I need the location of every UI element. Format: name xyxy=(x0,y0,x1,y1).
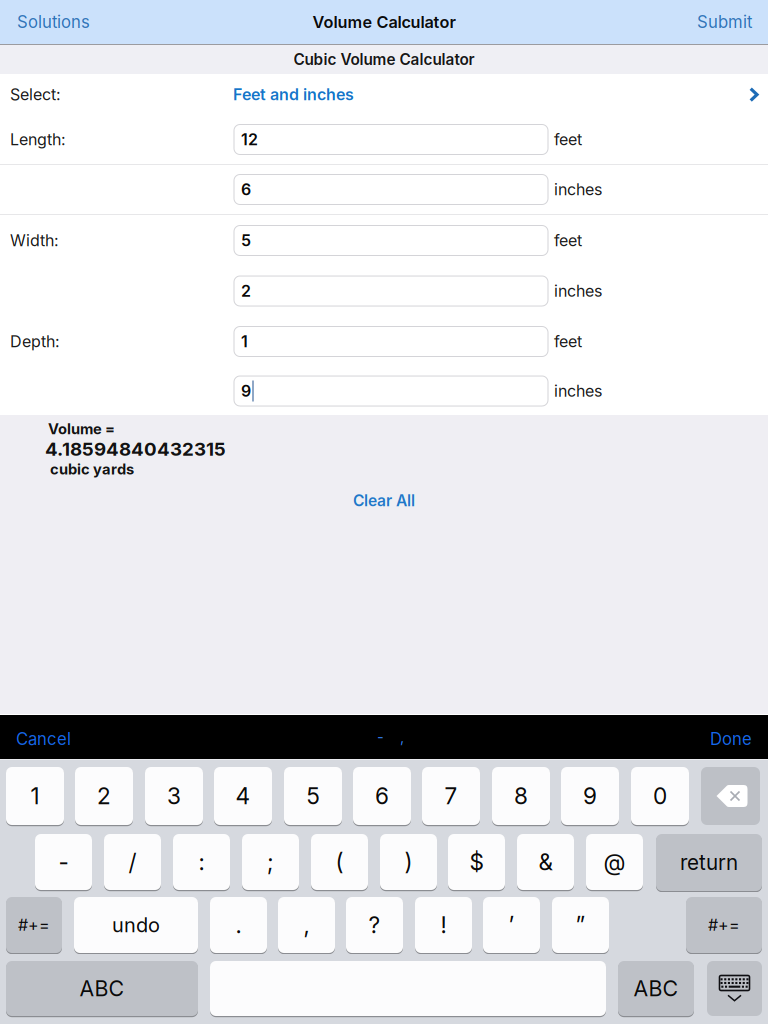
staticText: Length: xyxy=(10,130,66,149)
staticText: 2 xyxy=(97,782,111,810)
button[interactable]: $ xyxy=(448,834,505,891)
button[interactable]: Submit xyxy=(683,1,768,43)
button[interactable]: ( xyxy=(311,834,368,891)
staticText: 12 xyxy=(241,130,258,149)
button[interactable]: #+= xyxy=(686,897,762,954)
staticText: : xyxy=(198,848,204,876)
staticText: & xyxy=(538,848,552,876)
staticText: Depth: xyxy=(10,332,60,351)
staticText: , xyxy=(400,728,404,746)
staticText: Volume Calculator xyxy=(312,12,455,32)
button[interactable]: / xyxy=(104,834,161,891)
button[interactable]: 2 xyxy=(75,767,133,826)
button[interactable]: & xyxy=(517,834,574,891)
staticText: 1 xyxy=(241,332,248,351)
staticText: ( xyxy=(335,848,343,876)
button[interactable]: ; xyxy=(242,834,299,891)
button[interactable]: Clear All xyxy=(339,485,429,516)
button[interactable]: 6 xyxy=(353,767,411,826)
staticText: 4.18594840432315 xyxy=(45,438,226,460)
button[interactable]: 9 xyxy=(561,767,619,826)
button[interactable]: @ xyxy=(586,834,643,891)
staticText: inches xyxy=(554,381,602,401)
staticText: Submit xyxy=(697,12,752,32)
staticText: 8 xyxy=(514,782,528,810)
staticText: Feet and inches xyxy=(233,85,354,104)
staticText: 6 xyxy=(241,180,251,199)
button[interactable]: 5 xyxy=(284,767,342,826)
staticText: feet xyxy=(554,130,582,149)
staticText: . xyxy=(235,911,241,939)
staticText: feet xyxy=(554,231,582,250)
button[interactable]: 4 xyxy=(214,767,272,826)
staticText: Solutions xyxy=(17,12,90,32)
staticText: ABC xyxy=(79,976,124,1001)
staticText: 4 xyxy=(235,782,250,810)
staticText: #+= xyxy=(708,915,740,935)
button[interactable]: Cancel xyxy=(0,716,87,758)
button[interactable]: 0 xyxy=(631,767,689,826)
staticText: return xyxy=(680,850,738,875)
staticText: ! xyxy=(440,911,446,939)
staticText: ; xyxy=(267,848,274,876)
button[interactable]: ? xyxy=(346,897,403,954)
staticText: undo xyxy=(112,913,160,937)
button[interactable]: , xyxy=(278,897,335,954)
button[interactable]: 8 xyxy=(492,767,550,826)
staticText: 2 xyxy=(241,281,251,301)
button[interactable]: ABC xyxy=(6,961,198,1017)
staticText: feet xyxy=(554,332,582,351)
button[interactable]: - xyxy=(35,834,92,891)
staticText: inches xyxy=(554,281,602,301)
button[interactable]: 1 xyxy=(6,767,64,826)
staticText: / xyxy=(128,848,136,876)
staticText: Width: xyxy=(10,231,59,250)
button[interactable]: ABC xyxy=(618,961,694,1017)
staticText: 6 xyxy=(375,782,389,810)
staticText: ” xyxy=(575,911,585,939)
button[interactable]: Select: xyxy=(0,74,768,115)
staticText: ’ xyxy=(508,911,514,939)
staticText: cubic yards xyxy=(50,460,134,478)
staticText: Select: xyxy=(10,85,61,104)
staticText: Clear All xyxy=(353,491,415,510)
staticText: Done xyxy=(710,729,752,749)
button[interactable]: : xyxy=(173,834,230,891)
staticText: 9 xyxy=(241,381,251,401)
button[interactable]: undo xyxy=(74,897,198,954)
button[interactable]: Done xyxy=(694,716,768,758)
staticText: ) xyxy=(404,848,412,876)
staticText: 1 xyxy=(30,782,39,810)
staticText: #+= xyxy=(18,915,50,935)
staticText: - xyxy=(58,848,68,876)
staticText: ABC xyxy=(633,976,678,1001)
button[interactable]: Hide keyboard xyxy=(707,961,762,1016)
button[interactable]: . xyxy=(210,897,267,954)
button[interactable]: Solutions xyxy=(0,1,104,43)
staticText: $ xyxy=(469,848,483,876)
button[interactable]: ’ xyxy=(483,897,540,954)
staticText: 5 xyxy=(306,782,319,810)
staticText: 5 xyxy=(241,231,251,250)
button[interactable]: ) xyxy=(380,834,437,891)
button[interactable]: ” xyxy=(552,897,609,954)
staticText: 3 xyxy=(167,782,181,810)
staticText: Volume = xyxy=(48,420,115,438)
staticText: inches xyxy=(554,180,602,199)
button[interactable]: ! xyxy=(415,897,472,954)
staticText: - xyxy=(377,728,384,746)
button[interactable]: Delete xyxy=(701,767,760,825)
staticText: @ xyxy=(603,848,625,876)
staticText: Cancel xyxy=(16,729,71,749)
staticText: 9 xyxy=(583,782,597,810)
staticText: Cubic Volume Calculator xyxy=(293,50,474,69)
staticText: ? xyxy=(368,911,380,939)
button[interactable]: 3 xyxy=(145,767,203,826)
button[interactable]: return xyxy=(656,834,762,892)
staticText: 0 xyxy=(653,782,667,810)
staticText: 7 xyxy=(444,782,457,810)
staticText: , xyxy=(303,911,309,939)
button[interactable]: 7 xyxy=(422,767,480,826)
button[interactable]: #+= xyxy=(6,897,62,954)
button[interactable] xyxy=(210,961,606,1017)
